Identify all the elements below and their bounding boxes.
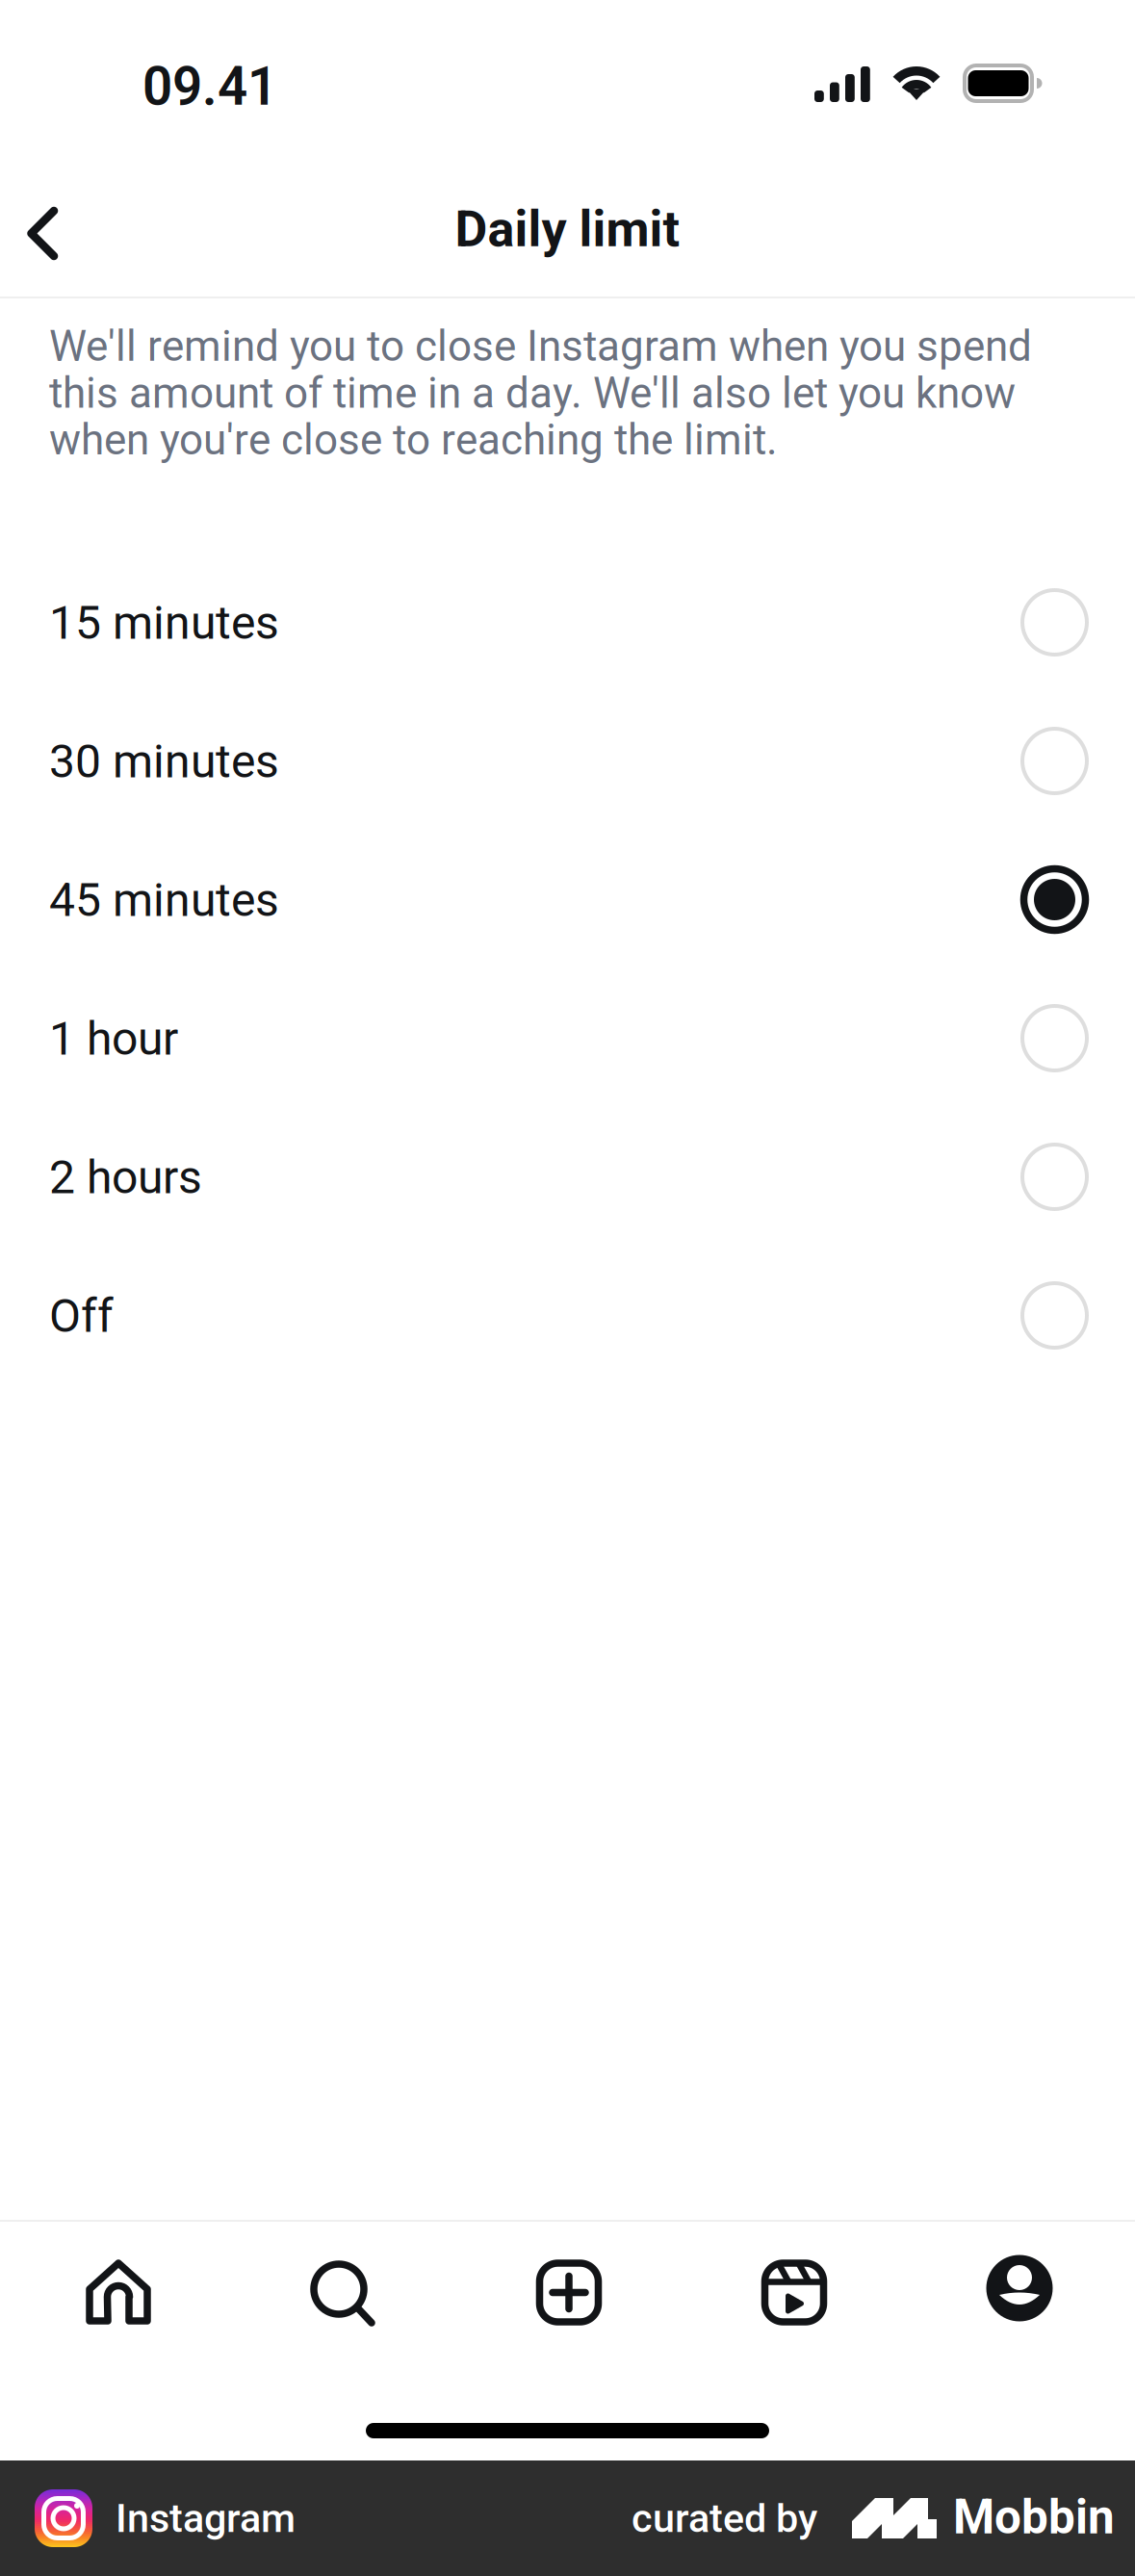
button[interactable]: Home [65,2250,171,2352]
staticText: 09.41 [142,56,277,118]
button[interactable]: Profile [967,2249,1072,2351]
button[interactable]: 15 minutes [0,554,1135,692]
staticText: 45 minutes [49,873,279,927]
button[interactable]: 30 minutes [0,692,1135,831]
button[interactable]: Create [516,2250,622,2352]
staticText: Daily limit [455,200,680,258]
staticText: curated by [632,2495,817,2542]
staticText: 2 hours [49,1150,202,1204]
staticText: Mobbin [953,2489,1115,2545]
button[interactable]: Back [0,155,111,301]
button[interactable]: Reels [741,2250,847,2352]
button[interactable]: 45 minutes [0,831,1135,969]
button[interactable]: Search [290,2248,396,2350]
button[interactable]: Off [0,1247,1135,1385]
button[interactable]: 1 hour [0,969,1135,1108]
staticText: We'll remind you to close Instagram when… [49,322,1032,465]
staticText: Instagram [116,2495,296,2542]
staticText: 1 hour [49,1012,178,1066]
staticText: 15 minutes [49,596,279,650]
staticText: 30 minutes [49,734,279,788]
staticText: Off [49,1289,114,1343]
button[interactable]: 2 hours [0,1108,1135,1247]
